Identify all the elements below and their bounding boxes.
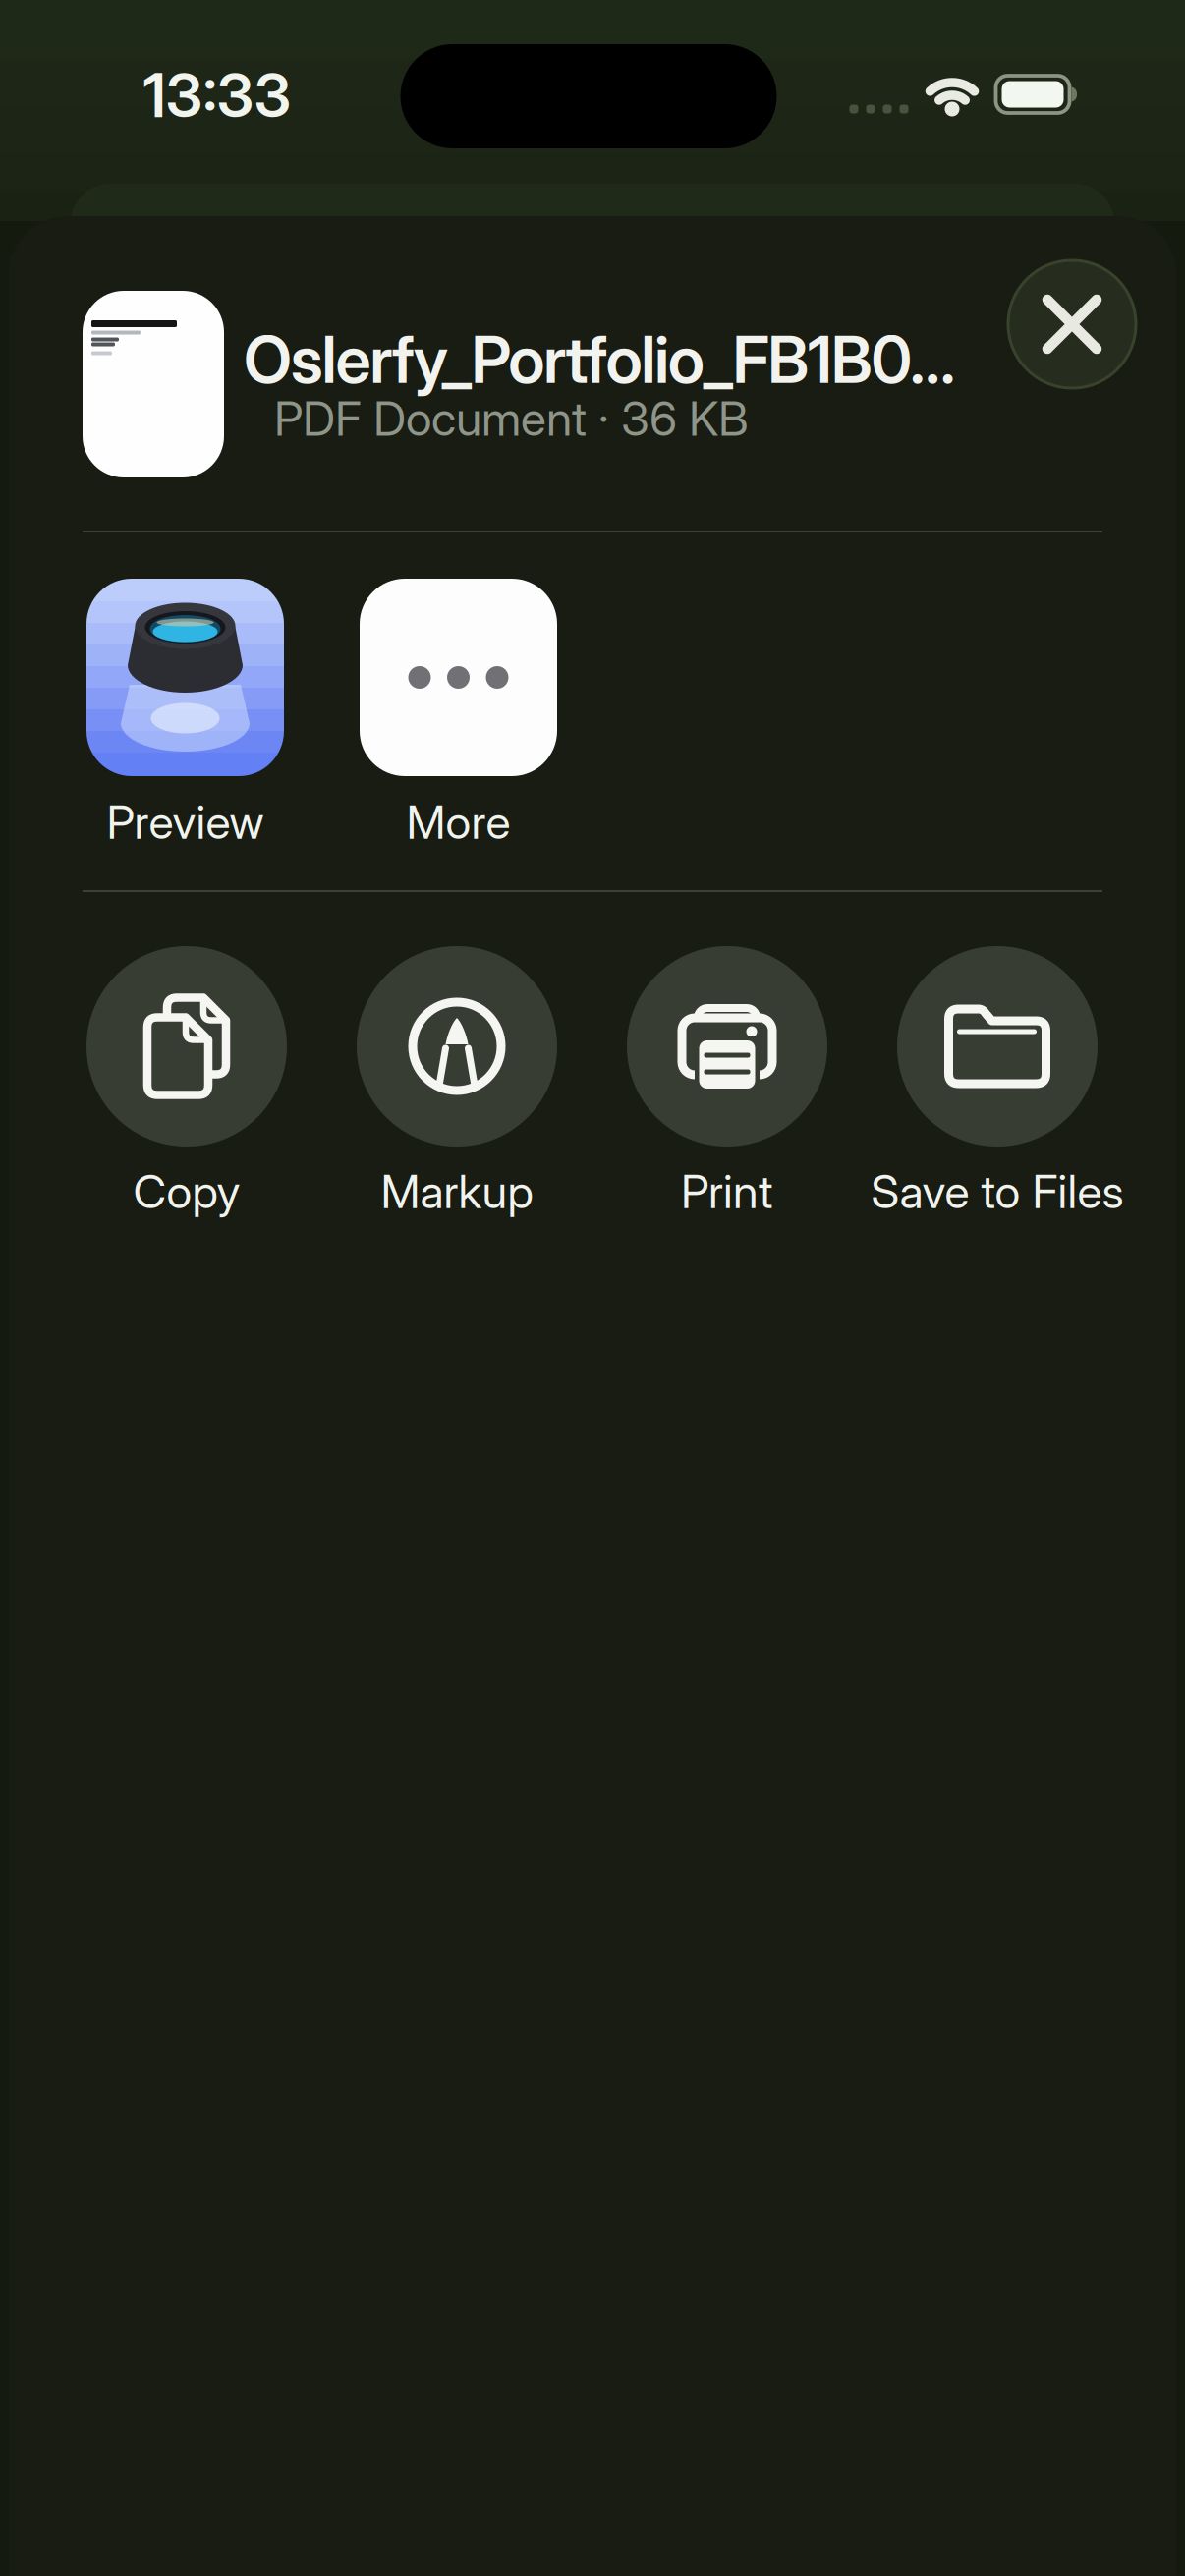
button[interactable]: Print (627, 946, 827, 1219)
staticText: Copy (133, 1164, 240, 1219)
staticText: More (406, 794, 510, 850)
staticText: Oslerfy_Portfolio_FB1B0A06-7... (244, 321, 994, 398)
staticText: Print (681, 1164, 773, 1219)
button[interactable]: Save to Files (871, 946, 1124, 1219)
button[interactable]: Close (1008, 260, 1136, 388)
staticText: PDF Document · 36 KB (274, 390, 749, 447)
button[interactable]: Markup (357, 946, 557, 1219)
button[interactable]: More (360, 579, 557, 850)
staticText: Preview (107, 794, 264, 850)
staticText: 13:33 (143, 59, 291, 132)
staticText: Save to Files (871, 1164, 1124, 1219)
button[interactable]: Copy (86, 946, 287, 1219)
button[interactable]: Preview (86, 579, 284, 850)
staticText: Markup (381, 1164, 533, 1219)
